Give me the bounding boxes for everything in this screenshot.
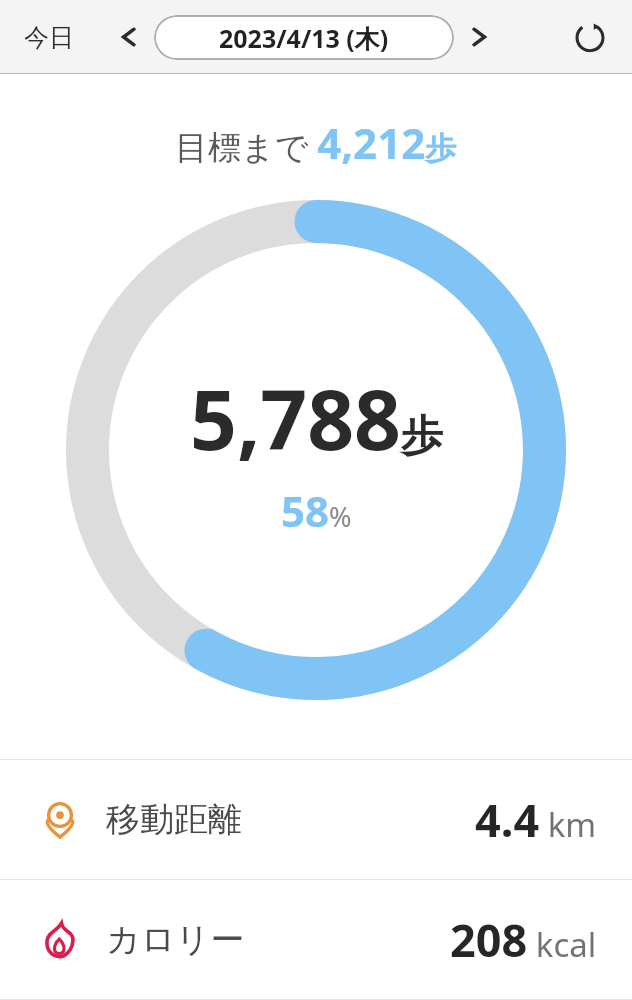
staticText: カロリー — [106, 918, 245, 961]
button[interactable]: Distance — [0, 760, 632, 879]
staticText: 2023/4/13 (木) — [219, 21, 389, 55]
button[interactable]: Refresh — [562, 9, 618, 65]
button[interactable]: Previous day — [106, 15, 150, 59]
staticText: 目標まで 4,212歩 — [175, 114, 457, 171]
staticText: 今日 — [24, 22, 74, 53]
other: Distance — [40, 800, 80, 840]
button[interactable]: 今日 — [14, 16, 84, 59]
button[interactable]: Calories — [0, 880, 632, 999]
button[interactable]: 2023/4/13 (木) — [154, 15, 454, 60]
other: Calories — [40, 920, 80, 960]
staticText: 208 kcal — [450, 909, 597, 970]
staticText: 移動距離 — [106, 798, 242, 841]
button[interactable]: Next day — [458, 15, 502, 59]
staticText: 58% — [281, 482, 352, 539]
staticText: 4.4 km — [475, 789, 597, 850]
staticText: 5,788歩 — [190, 362, 443, 474]
